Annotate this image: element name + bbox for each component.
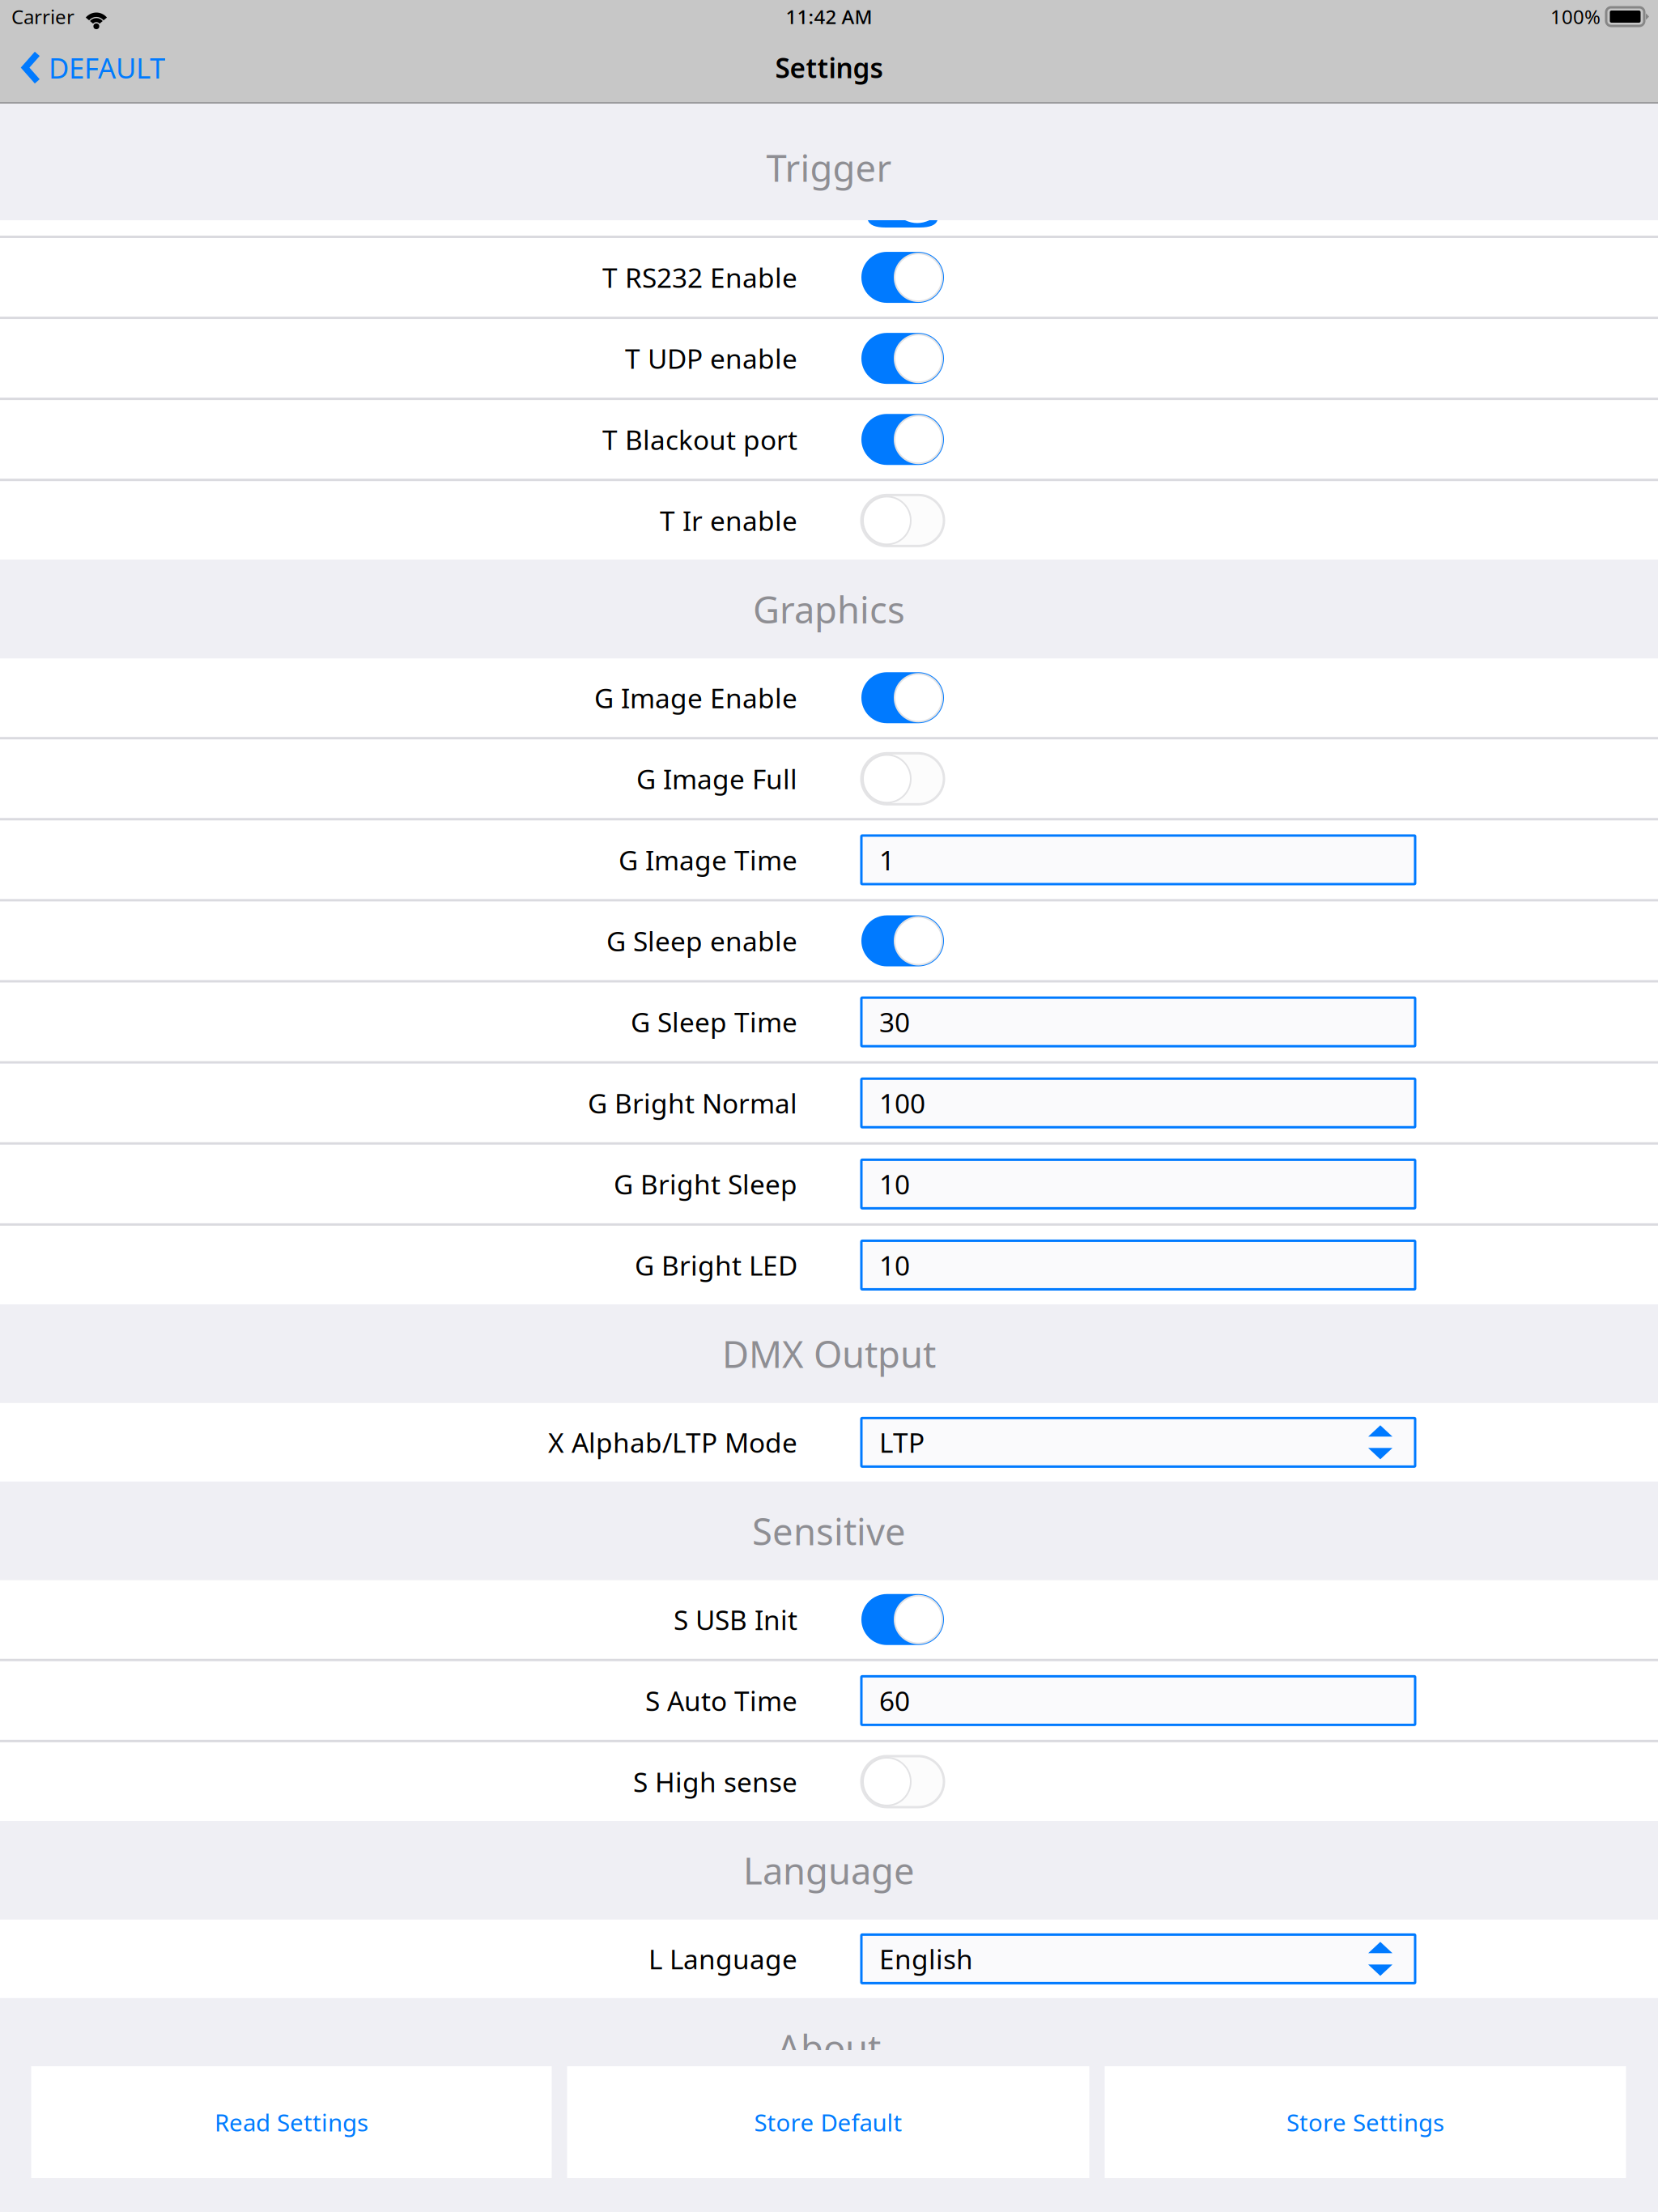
staticText: 11:42 AM xyxy=(786,4,872,30)
staticText: Store Settings xyxy=(1286,2106,1444,2138)
staticText: About xyxy=(777,2023,881,2072)
staticText: 60 xyxy=(879,1683,910,1719)
button[interactable]: G Sleep enable xyxy=(0,902,1658,980)
button[interactable]: S Auto Time xyxy=(0,1661,1658,1740)
button[interactable]: Store Default xyxy=(567,2066,1089,2178)
staticText: T Blackout port xyxy=(602,422,797,457)
button[interactable]: G Sleep Time xyxy=(0,983,1658,1061)
button[interactable]: G Bright Normal xyxy=(861,1079,1415,1127)
staticText: X Alphab/LTP Mode xyxy=(548,1424,797,1460)
button[interactable]: X Alphab/LTP Mode xyxy=(861,1418,1415,1467)
button[interactable]: T UDP enable xyxy=(861,333,944,384)
staticText: 1 xyxy=(879,842,895,878)
button[interactable]: G Image Time xyxy=(0,821,1658,899)
button[interactable]: G Sleep Time xyxy=(861,998,1415,1046)
button[interactable]: G Bright LED xyxy=(861,1241,1415,1289)
staticText: G Bright Sleep xyxy=(614,1166,797,1202)
staticText: Read Settings xyxy=(215,2106,368,2138)
staticText: Store Default xyxy=(754,2106,902,2138)
button[interactable]: G Bright LED xyxy=(0,1226,1658,1304)
staticText: DMX Output xyxy=(722,1329,936,1378)
button[interactable]: T RS232 Enable xyxy=(0,238,1658,317)
button[interactable]: G Bright Sleep xyxy=(0,1145,1658,1223)
button[interactable]: G Image Enable xyxy=(0,658,1658,737)
button[interactable]: T Ir enable xyxy=(861,495,944,546)
staticText: T Ir enable xyxy=(660,503,797,538)
button[interactable]: T Blackout port xyxy=(0,400,1658,479)
staticText: DEFAULT xyxy=(49,49,165,86)
button[interactable]: L Language xyxy=(0,1920,1658,1998)
button[interactable]: S USB Init xyxy=(861,1594,944,1645)
staticText: Language xyxy=(743,1846,915,1895)
staticText: 100 xyxy=(879,1085,925,1121)
staticText: G Sleep enable xyxy=(606,923,797,959)
button[interactable]: S High sense xyxy=(0,1742,1658,1821)
staticText: S Auto Time xyxy=(645,1683,797,1719)
staticText: G Bright Normal xyxy=(588,1085,797,1121)
staticText: 30 xyxy=(879,1004,910,1040)
button[interactable]: G Image Time xyxy=(861,836,1415,884)
button[interactable]: S Auto Time xyxy=(861,1676,1415,1725)
staticText: Trigger xyxy=(766,143,892,192)
button[interactable]: G Bright Sleep xyxy=(861,1160,1415,1208)
button[interactable]: S High sense xyxy=(861,1756,944,1807)
staticText: Sensitive xyxy=(752,1507,906,1555)
staticText: G Image Time xyxy=(619,842,797,878)
button[interactable]: T UDP enable xyxy=(0,319,1658,398)
button[interactable]: L Language xyxy=(861,1935,1415,1983)
button[interactable]: T Ir enable xyxy=(0,481,1658,560)
button[interactable]: G Sleep enable xyxy=(861,915,944,966)
button[interactable]: Read Settings xyxy=(31,2066,552,2178)
button[interactable]: S USB Init xyxy=(0,1580,1658,1659)
staticText: 100% xyxy=(1550,4,1601,30)
staticText: G Sleep Time xyxy=(631,1004,797,1040)
button[interactable]: DEFAULT xyxy=(0,33,180,102)
staticText: English xyxy=(879,1941,973,1977)
staticText: S High sense xyxy=(633,1764,797,1800)
button[interactable]: G Image Full xyxy=(0,739,1658,818)
staticText: T UDP enable xyxy=(625,340,797,376)
button[interactable]: G Bright Normal xyxy=(0,1064,1658,1142)
staticText: 10 xyxy=(879,1166,910,1202)
staticText: LTP xyxy=(879,1424,925,1460)
staticText: T RS232 Enable xyxy=(602,259,797,295)
staticText: L Language xyxy=(648,1941,797,1977)
staticText: Carrier xyxy=(11,4,74,30)
button[interactable]: Store Settings xyxy=(1105,2066,1626,2178)
staticText: G Bright LED xyxy=(635,1247,797,1283)
staticText: G Image Enable xyxy=(594,680,797,716)
button[interactable]: T RS232 Enable xyxy=(861,252,944,303)
staticText: G Image Full xyxy=(636,761,797,797)
staticText: Graphics xyxy=(753,585,905,633)
button[interactable]: G Image Full xyxy=(861,753,944,804)
button[interactable]: T Blackout port xyxy=(861,414,944,465)
staticText: 10 xyxy=(879,1247,910,1283)
button[interactable]: X Alphab/LTP Mode xyxy=(0,1403,1658,1482)
staticText: S USB Init xyxy=(674,1602,797,1637)
button[interactable]: G Image Enable xyxy=(861,672,944,723)
staticText: Settings xyxy=(775,50,883,86)
